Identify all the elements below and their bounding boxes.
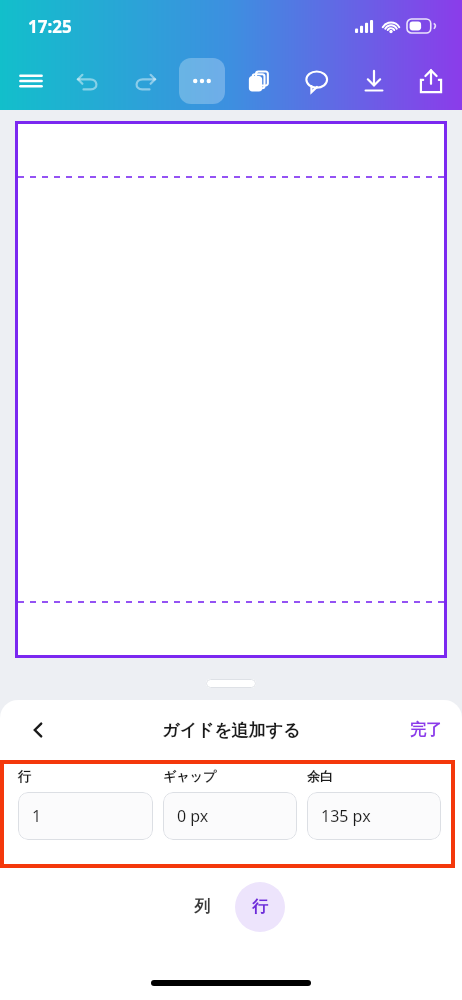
staticText: 17:25	[28, 15, 72, 38]
staticText: 135 px	[321, 805, 371, 827]
staticText: 1	[32, 805, 42, 827]
button[interactable]: Share	[408, 58, 454, 104]
button[interactable]: Download	[351, 58, 397, 104]
button[interactable]: 0 px	[163, 792, 297, 840]
staticText: 余白	[307, 768, 333, 784]
staticText: 行	[252, 897, 268, 917]
button[interactable]: Redo	[122, 58, 168, 104]
button[interactable]: 完了	[404, 714, 448, 746]
button[interactable]: 行	[235, 882, 285, 932]
button[interactable]: Back	[18, 710, 58, 750]
button[interactable]: 1	[18, 792, 153, 840]
staticText: ガイドを追加する	[162, 720, 301, 741]
button[interactable]: More options	[179, 58, 225, 104]
button[interactable]: Comments	[294, 58, 340, 104]
button[interactable]: Menu	[8, 58, 54, 104]
button[interactable]: 135 px	[307, 792, 441, 840]
staticText: 列	[194, 897, 210, 917]
staticText: 0 px	[177, 805, 209, 827]
staticText: 行	[18, 768, 31, 784]
button[interactable]: Undo	[65, 58, 111, 104]
staticText: 完了	[410, 720, 442, 740]
staticText: ギャップ	[163, 768, 217, 784]
button[interactable]: Pages	[237, 58, 283, 104]
button[interactable]: 列	[177, 882, 227, 932]
